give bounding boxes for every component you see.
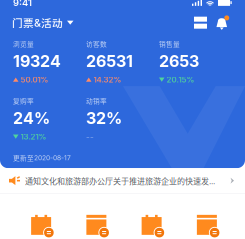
staticText: 32% bbox=[86, 109, 122, 128]
staticText: 门票&活动 bbox=[12, 15, 63, 30]
staticText: 浏览量 bbox=[13, 39, 34, 48]
staticText: 访客数 bbox=[86, 39, 107, 48]
staticText: 动销率 bbox=[86, 96, 107, 105]
button[interactable]: 通知文化和旅游部办公厅关于推进旅游企业的快速发展计划... bbox=[0, 168, 245, 193]
staticText: 20.15% bbox=[166, 75, 194, 84]
staticText: -- bbox=[86, 132, 94, 141]
staticText: 19324 bbox=[13, 52, 61, 71]
staticText: 更新至2020-08-17 bbox=[13, 153, 71, 162]
staticText: 24% bbox=[13, 109, 50, 128]
button[interactable]: 订单 bbox=[72, 211, 127, 239]
staticText: 14.32% bbox=[93, 75, 121, 84]
staticText: 销售量 bbox=[159, 39, 180, 48]
button[interactable]: 切换视图 bbox=[189, 13, 212, 33]
button[interactable]: 报表 bbox=[183, 211, 238, 239]
button[interactable]: 通知 bbox=[212, 13, 233, 32]
button[interactable]: 核销 bbox=[127, 211, 183, 239]
staticText: 50.01% bbox=[20, 75, 48, 84]
staticText: 9:41 bbox=[13, 0, 32, 8]
button[interactable]: 日程 bbox=[17, 211, 72, 239]
staticText: 通知文化和旅游部办公厅关于推进旅游企业的快速发展计划... bbox=[25, 175, 219, 186]
staticText: 13.21% bbox=[20, 132, 46, 141]
button[interactable]: 门票&活动 bbox=[12, 13, 79, 33]
staticText: 复购率 bbox=[13, 96, 34, 105]
staticText: 26531 bbox=[86, 52, 133, 71]
staticText: 2653 bbox=[159, 52, 199, 71]
